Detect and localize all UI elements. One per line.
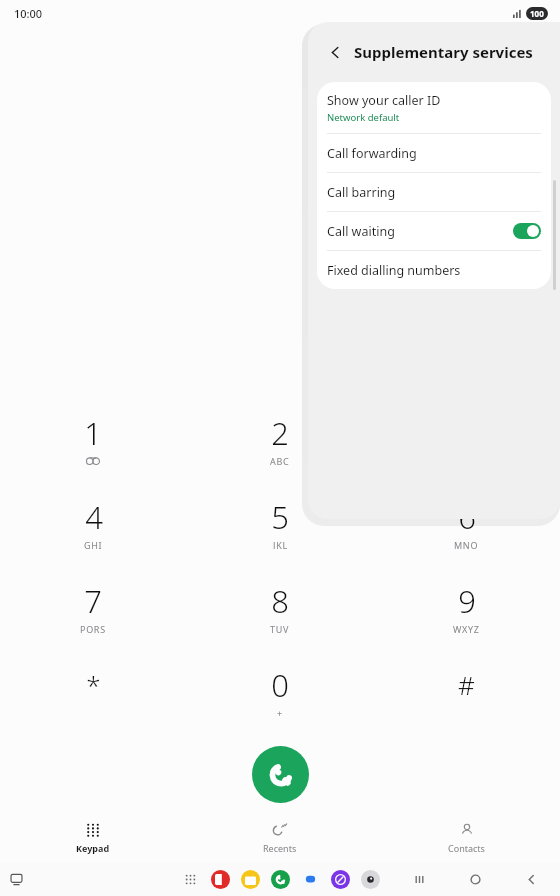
button[interactable]: Recents [186, 816, 373, 860]
staticText: 9 [458, 580, 476, 622]
button[interactable]: 8 [186, 564, 373, 648]
staticText: 1 [84, 412, 102, 454]
staticText: ABC [270, 455, 290, 465]
staticText: 4 [85, 496, 103, 538]
button[interactable]: Keypad [0, 816, 186, 860]
button[interactable]: 0 [186, 648, 373, 732]
button[interactable]: 2 [186, 396, 373, 480]
staticText: 100 [530, 8, 544, 19]
staticText: Call barring [327, 184, 396, 201]
button[interactable]: Camera [361, 870, 380, 889]
button[interactable]: Back [520, 868, 542, 890]
staticText: + [277, 707, 283, 717]
staticText: * [86, 667, 101, 702]
staticText: 7 [84, 580, 102, 622]
staticText: Recents [263, 842, 297, 854]
staticText: 10:00 [14, 6, 43, 21]
staticText: Call waiting [327, 223, 395, 240]
staticText: # [458, 667, 475, 702]
button[interactable]: Recents [408, 868, 430, 890]
button[interactable]: Call waiting [317, 212, 551, 251]
button[interactable]: 9 [373, 564, 560, 648]
button[interactable]: All apps [180, 869, 200, 889]
button[interactable]: * [0, 648, 186, 732]
staticText: 6 [458, 496, 476, 538]
button[interactable]: Call forwarding [317, 134, 551, 173]
staticText: WXYZ [453, 623, 480, 633]
button[interactable]: Phone [271, 870, 290, 889]
staticText: Supplementary services [354, 42, 533, 62]
button[interactable]: Back [322, 39, 348, 65]
button[interactable]: 5 [186, 480, 373, 564]
staticText: GHI [84, 539, 103, 549]
staticText: 8 [271, 580, 289, 622]
staticText: 5 [271, 496, 289, 538]
staticText: Call forwarding [327, 145, 417, 162]
button[interactable]: Internet [331, 870, 350, 889]
button[interactable]: Call [252, 746, 309, 803]
staticText: 2 [271, 412, 289, 454]
button[interactable]: 6 [373, 480, 560, 564]
staticText: Fixed dialling numbers [327, 262, 461, 279]
button[interactable]: Samsung Notes [211, 870, 230, 889]
button[interactable]: Call barring [317, 173, 551, 212]
staticText: 0 [271, 664, 289, 706]
staticText: Keypad [76, 842, 110, 854]
staticText: JKL [273, 539, 288, 549]
button[interactable]: Call waiting toggle [513, 223, 541, 239]
button[interactable]: 1 [0, 396, 186, 480]
staticText: MNO [454, 539, 479, 549]
staticText: TUV [270, 623, 290, 633]
staticText: PQRS [80, 623, 106, 633]
button[interactable]: 7 [0, 564, 186, 648]
button[interactable]: Recent apps panel [6, 869, 26, 889]
staticText: Network default [327, 111, 400, 124]
staticText: Show your caller ID [327, 92, 441, 109]
button[interactable]: Fixed dialling numbers [317, 251, 551, 289]
button[interactable]: Show your caller ID [317, 82, 551, 134]
button[interactable]: My Files [241, 870, 260, 889]
staticText: Contacts [448, 842, 485, 854]
button[interactable]: Messages [301, 870, 320, 889]
button[interactable]: # [373, 648, 560, 732]
button[interactable]: Home [464, 868, 486, 890]
button[interactable]: Contacts [373, 816, 560, 860]
button[interactable]: 4 [0, 480, 186, 564]
